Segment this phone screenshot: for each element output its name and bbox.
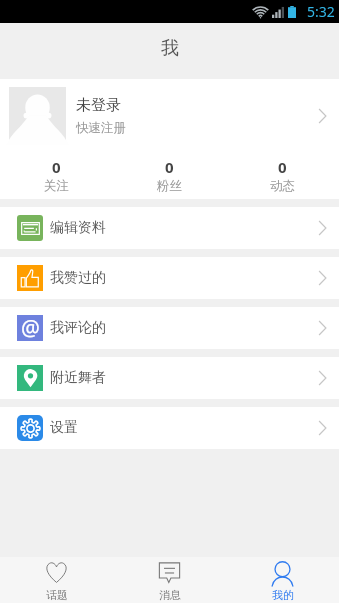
staticText: 未登录: [76, 96, 121, 115]
staticText: 快速注册: [76, 120, 126, 136]
staticText: 我: [161, 37, 179, 60]
button[interactable]: 设置: [0, 407, 339, 449]
button[interactable]: 消息: [113, 557, 226, 603]
staticText: 0: [52, 157, 61, 177]
button[interactable]: @: [0, 307, 339, 349]
staticText: 消息: [159, 588, 181, 602]
staticText: 0: [278, 157, 287, 177]
button[interactable]: 编辑资料: [0, 207, 339, 249]
staticText: 附近舞者: [50, 369, 106, 387]
staticText: 粉丝: [157, 178, 182, 194]
staticText: 0: [165, 157, 174, 177]
button[interactable]: 0: [113, 152, 226, 199]
staticText: 我评论的: [50, 319, 106, 337]
button[interactable]: 0: [0, 152, 113, 199]
staticText: @: [21, 315, 40, 340]
staticText: 设置: [50, 419, 78, 437]
staticText: 关注: [44, 178, 69, 194]
staticText: 5:32: [307, 2, 335, 21]
button[interactable]: 附近舞者: [0, 357, 339, 399]
staticText: 话题: [46, 588, 68, 602]
button[interactable]: 我的: [226, 557, 339, 603]
button[interactable]: 我赞过的: [0, 257, 339, 299]
staticText: 编辑资料: [50, 219, 106, 237]
button[interactable]: 话题: [0, 557, 113, 603]
button[interactable]: 0: [226, 152, 339, 199]
button[interactable]: 未登录 快速注册: [0, 79, 339, 152]
staticText: 我赞过的: [50, 269, 106, 287]
staticText: 我的: [272, 588, 294, 602]
staticText: 动态: [270, 178, 295, 194]
